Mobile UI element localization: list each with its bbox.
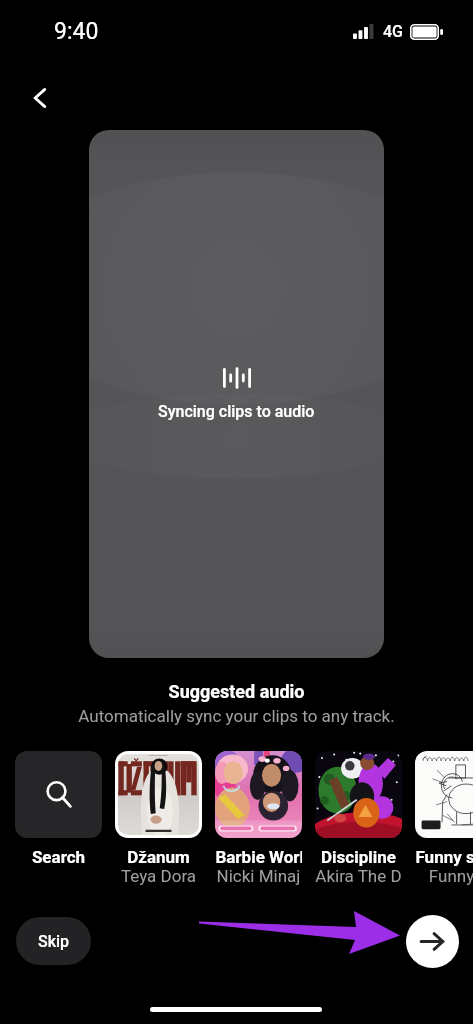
staticText: Funny — [415, 866, 473, 885]
button[interactable]: Funny song — [415, 751, 473, 885]
button[interactable]: Barbie World — [215, 751, 302, 885]
button[interactable]: Džanum — [115, 751, 202, 885]
staticText: Barbie World — [215, 847, 302, 866]
staticText: Teya Dora — [115, 866, 202, 885]
staticText: Skip — [38, 932, 70, 951]
button[interactable]: Skip — [16, 917, 91, 965]
staticText: Discipline — [315, 847, 402, 866]
staticText: 4G — [383, 22, 403, 41]
staticText: Syncing clips to audio — [158, 402, 315, 421]
staticText: Search — [15, 847, 102, 866]
staticText: Nicki Minaj — [215, 866, 302, 885]
staticText: Suggested audio — [0, 681, 473, 702]
staticText: Džanum — [115, 847, 202, 866]
staticText: Funny song — [415, 847, 473, 866]
staticText: Automatically sync your clips to any tra… — [0, 706, 473, 726]
button[interactable]: Search — [15, 751, 102, 866]
button[interactable]: Back — [16, 74, 64, 122]
staticText: 9:40 — [54, 18, 99, 45]
button[interactable]: Next — [406, 915, 459, 968]
button[interactable]: Discipline — [315, 751, 402, 885]
staticText: Akira The Don — [315, 866, 402, 885]
